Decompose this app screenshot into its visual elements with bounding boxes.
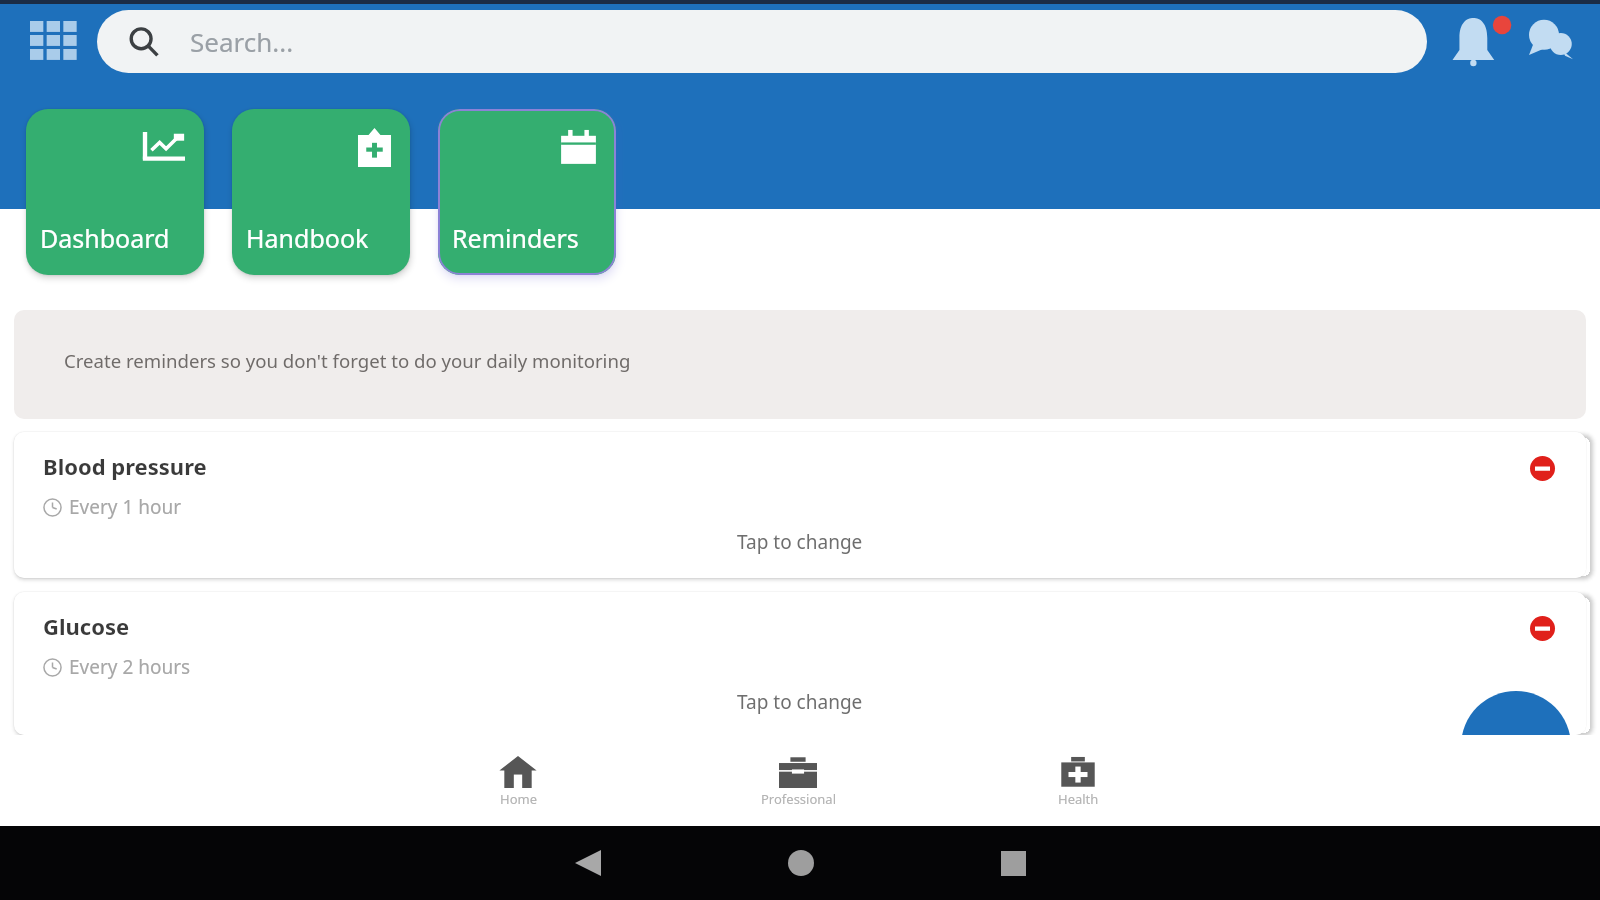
button[interactable]: Glucose — [14, 592, 1586, 735]
button[interactable]: Back — [481, 826, 694, 900]
button[interactable]: Blood pressure — [14, 432, 1586, 578]
button[interactable]: Messages — [1520, 14, 1576, 70]
button[interactable]: Handbook — [232, 109, 410, 275]
button[interactable]: Home — [378, 735, 658, 826]
button[interactable]: Add reminder — [1461, 691, 1571, 801]
button[interactable]: Health — [938, 735, 1218, 826]
staticText: Glucose — [43, 611, 130, 641]
staticText: Reminders — [452, 221, 579, 255]
staticText: Professional — [761, 790, 836, 808]
staticText: Home — [500, 790, 537, 808]
button[interactable]: Dashboard — [26, 109, 204, 275]
button[interactable]: Notifications — [1449, 13, 1507, 71]
staticText: Every 1 hour — [69, 494, 182, 520]
button[interactable]: Search... — [97, 10, 1427, 73]
staticText: Dashboard — [40, 221, 170, 255]
staticText: Health — [1058, 790, 1099, 808]
button[interactable]: Home — [694, 826, 907, 900]
staticText: Tap to change — [737, 529, 863, 555]
button[interactable]: Remove reminder — [1522, 448, 1562, 488]
button[interactable]: Remove reminder — [1522, 608, 1562, 648]
staticText: Blood pressure — [43, 451, 207, 481]
staticText: Search... — [190, 24, 294, 59]
staticText: Tap to change — [737, 689, 863, 715]
button[interactable]: Professional — [658, 735, 938, 826]
button[interactable]: Recents — [907, 826, 1120, 900]
button[interactable]: Apps — [30, 17, 80, 67]
button[interactable]: Reminders — [438, 109, 616, 275]
staticText: Every 2 hours — [69, 654, 191, 680]
staticText: Create reminders so you don't forget to … — [64, 348, 631, 373]
staticText: Handbook — [246, 221, 369, 255]
